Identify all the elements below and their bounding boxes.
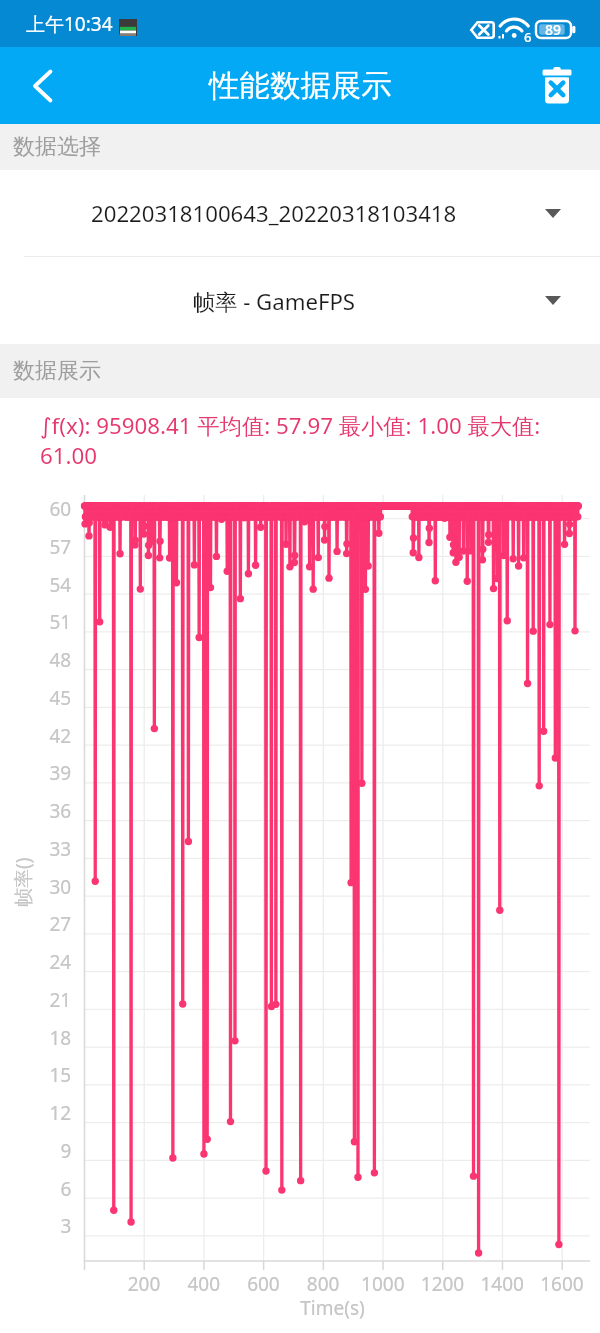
button[interactable]: Back (0, 51, 60, 121)
staticText: 20220318100643_20220318103418 (91, 198, 457, 228)
button[interactable]: 20220318100643_20220318103418 (0, 170, 600, 256)
button[interactable]: Delete (534, 51, 600, 121)
staticText: 帧率 - GameFPS (193, 286, 356, 316)
staticText: ∫f(x): 95908.41 平均值: 57.97 最小值: 1.00 最大值… (40, 410, 554, 470)
staticText: 性能数据展示 (209, 67, 392, 105)
button[interactable]: 帧率 - GameFPS (0, 257, 600, 344)
staticText: 上午10:34 (26, 11, 113, 37)
staticText: 数据选择 (13, 133, 101, 161)
staticText: 数据展示 (13, 357, 101, 385)
